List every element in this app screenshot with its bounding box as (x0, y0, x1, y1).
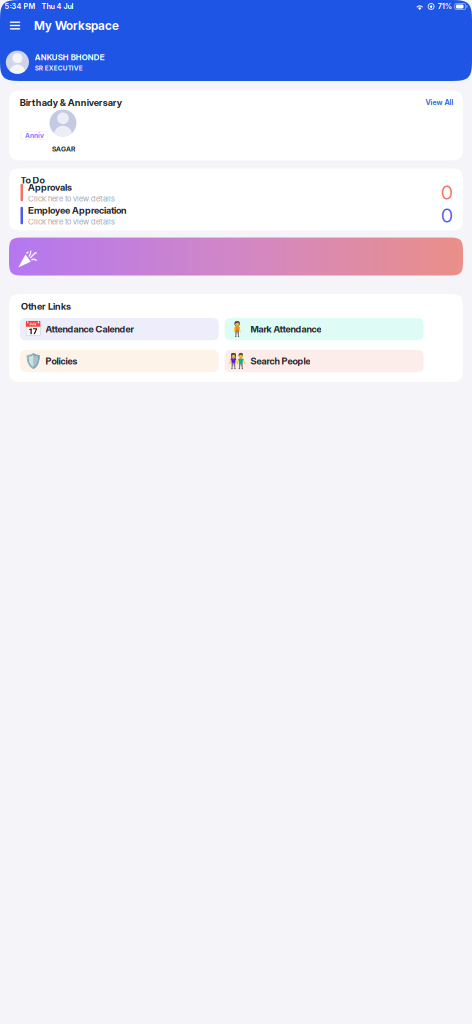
button[interactable]: Approvals (9, 183, 463, 202)
staticText: SAGAR (52, 145, 75, 153)
button[interactable]: 🛡 (20, 350, 219, 372)
button[interactable]: View All (424, 96, 454, 109)
button[interactable]: Open menu (4, 18, 25, 32)
staticText: Mark Attendance (250, 323, 321, 335)
staticText: Thu 4 Jul (41, 2, 73, 11)
staticText: 🛡 (24, 352, 42, 370)
button[interactable]: Anniv (21, 108, 93, 161)
staticText: SR EXECUTIVE (35, 64, 83, 72)
button[interactable]: Employee Appreciation (9, 206, 463, 225)
staticText: Other Links (21, 300, 71, 312)
button[interactable]: 📅 (20, 318, 219, 340)
staticText: My Workspace (34, 18, 119, 33)
button[interactable]: ANKUSH BHONDE (0, 50, 472, 74)
staticText: Approvals (28, 182, 72, 193)
staticText: Birthady & Anniversary (20, 97, 122, 108)
staticText: 👫 (228, 352, 246, 370)
staticText: Employee Appreciation (28, 205, 127, 216)
staticText: 71% (438, 2, 452, 11)
staticText: 🧍 (228, 321, 246, 338)
staticText: Click here to view details (28, 217, 115, 226)
staticText: To Do (20, 174, 44, 186)
staticText: Attendance Calender (46, 323, 134, 335)
staticText: Click here to view details (28, 194, 115, 203)
button[interactable]: 👫 (225, 350, 424, 372)
staticText: 0 (441, 204, 453, 227)
staticText: 0 (441, 181, 453, 204)
staticText: Anniv (25, 131, 44, 139)
staticText: Policies (46, 355, 78, 367)
staticText: 5:34 PM (4, 2, 35, 11)
button[interactable]: 🧍 (225, 318, 424, 340)
staticText: 📅 (24, 321, 42, 338)
staticText: View All (425, 98, 453, 107)
staticText: Search People (250, 355, 310, 367)
staticText: ANKUSH BHONDE (35, 52, 105, 62)
button[interactable]: Celebrations (9, 237, 463, 275)
